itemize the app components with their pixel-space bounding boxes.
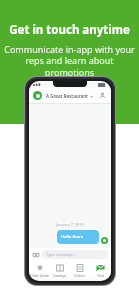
staticText: Communicate in-app with your reps and le…	[0, 43, 139, 79]
staticText: Hello there	[61, 234, 84, 240]
button[interactable]: Camera	[32, 251, 40, 259]
staticText: Get in touch anytime	[9, 22, 130, 38]
staticText: Chat	[97, 274, 104, 278]
staticText: Order Guide	[30, 274, 49, 278]
staticText: Orders	[74, 274, 85, 278]
button[interactable]: Chat	[90, 261, 111, 279]
button[interactable]: Hello there	[57, 230, 99, 244]
button[interactable]: Account	[98, 91, 107, 100]
staticText: Type message...	[46, 252, 76, 257]
button[interactable]: Type message...	[42, 250, 108, 259]
button[interactable]: A Great Restaurant	[46, 93, 93, 99]
button[interactable]: Home	[33, 91, 42, 100]
button[interactable]: Order Guide	[29, 261, 49, 279]
staticText: January 7, 2019	[29, 222, 111, 227]
button[interactable]: Orders	[69, 261, 90, 279]
button[interactable]: Catalogs	[49, 261, 69, 279]
staticText: A Great Restaurant	[46, 93, 88, 99]
staticText: Catalogs	[53, 274, 66, 278]
